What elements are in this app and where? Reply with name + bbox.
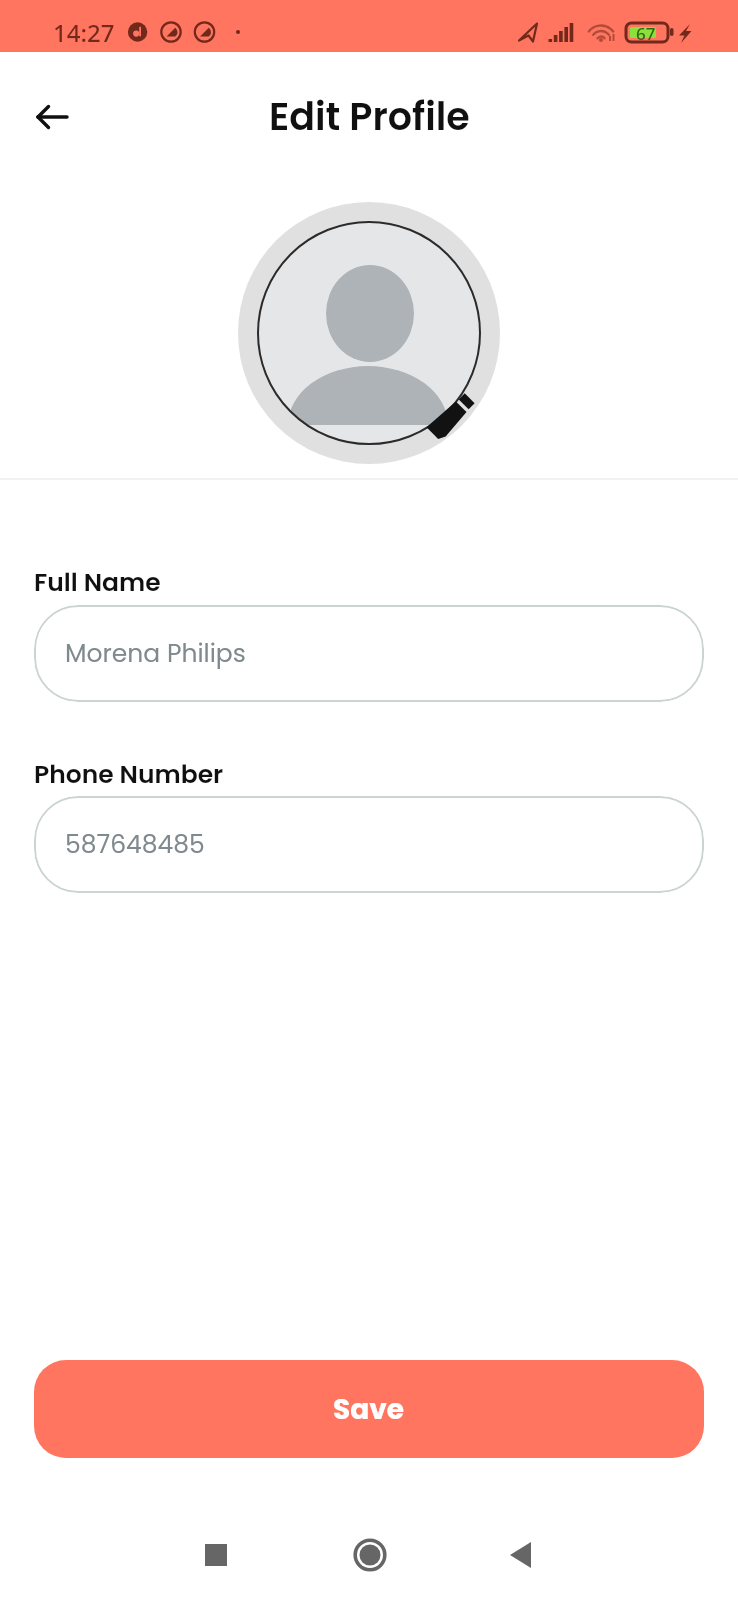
button[interactable]: Morena Philips — [34, 605, 704, 702]
button[interactable]: Home — [334, 1519, 406, 1591]
staticText: Full Name — [34, 565, 161, 600]
staticText: 587648485 — [65, 827, 205, 862]
staticText: 14:27 — [53, 16, 115, 49]
button[interactable]: Back — [16, 81, 88, 153]
button[interactable]: Back — [484, 1519, 556, 1591]
staticText: Morena Philips — [65, 636, 246, 671]
staticText: Phone Number — [34, 757, 224, 792]
button[interactable]: 587648485 — [34, 796, 704, 893]
button[interactable]: Recent apps — [180, 1519, 252, 1591]
staticText: Edit Profile — [269, 90, 470, 143]
staticText: Save — [333, 1390, 405, 1429]
button[interactable]: Save — [34, 1360, 704, 1458]
staticText: 67 — [636, 22, 656, 45]
